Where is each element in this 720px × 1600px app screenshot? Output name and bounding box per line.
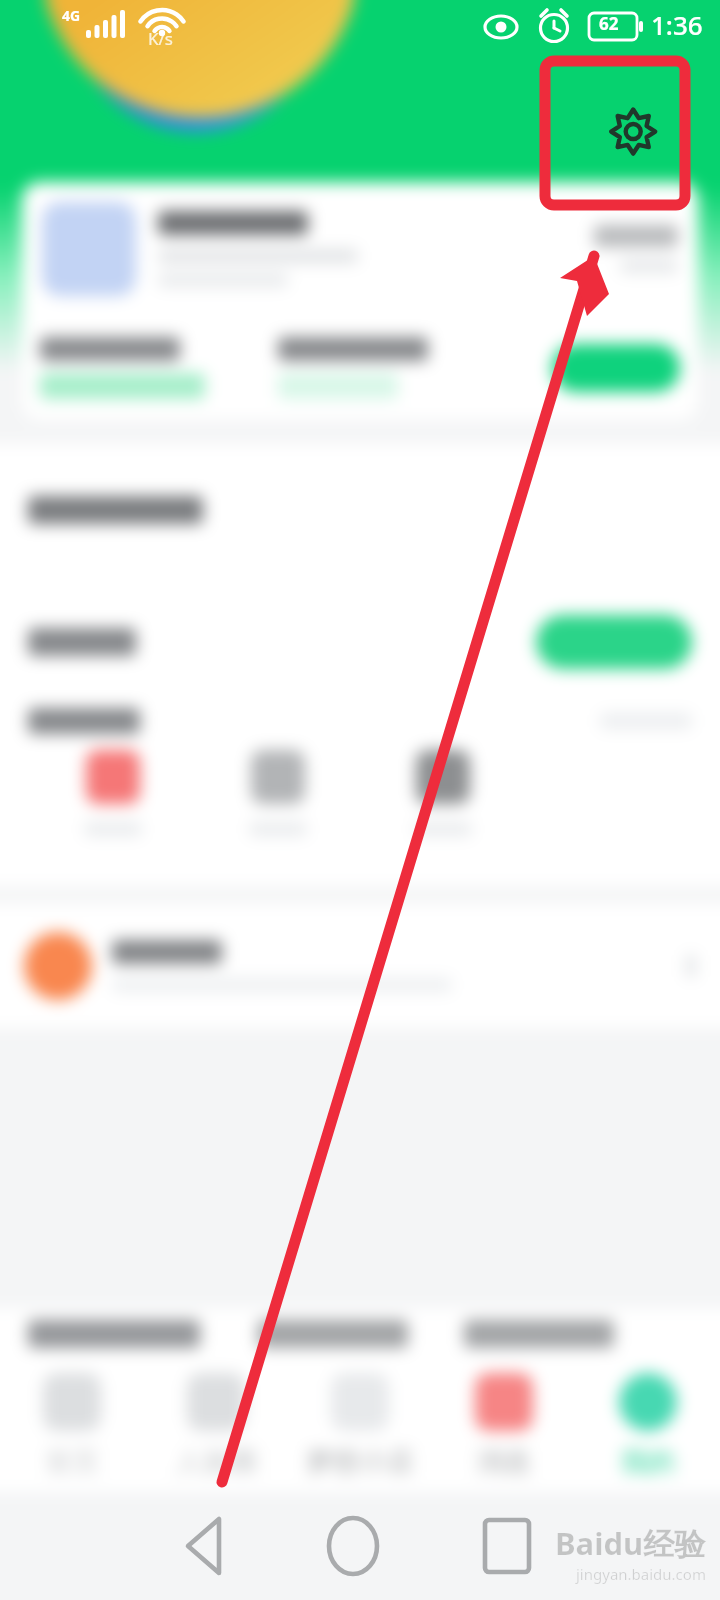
- button[interactable]: [40, 337, 278, 399]
- button[interactable]: [28, 576, 692, 708]
- staticText: 消息: [477, 1445, 531, 1479]
- staticText: 4G: [62, 6, 81, 25]
- staticText: 人脉圈: [176, 1445, 257, 1479]
- button[interactable]: [278, 337, 552, 399]
- button[interactable]: 梦想小店: [288, 1360, 432, 1492]
- button[interactable]: [195, 734, 360, 836]
- button[interactable]: [24, 904, 696, 1028]
- staticText: 首页: [45, 1445, 99, 1479]
- button[interactable]: [28, 444, 692, 576]
- button[interactable]: [552, 344, 680, 392]
- staticText: jingyan.baidu.com: [576, 1564, 706, 1584]
- button[interactable]: [22, 182, 698, 420]
- staticText: K/s: [148, 27, 173, 50]
- staticText: 62: [599, 12, 619, 35]
- button[interactable]: 消息: [432, 1360, 576, 1492]
- button[interactable]: 人脉圈: [144, 1360, 288, 1492]
- button[interactable]: 首页: [0, 1360, 144, 1492]
- button[interactable]: [30, 734, 195, 836]
- staticText: 我的: [621, 1445, 675, 1479]
- staticText: 1:36: [651, 7, 703, 42]
- staticText: 梦想小店: [306, 1445, 414, 1479]
- button[interactable]: [360, 734, 525, 836]
- button[interactable]: Settings: [545, 61, 685, 205]
- staticText: Baidu经验: [555, 1522, 706, 1564]
- button[interactable]: 我的: [576, 1360, 720, 1492]
